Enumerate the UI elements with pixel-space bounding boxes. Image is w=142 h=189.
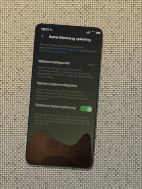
- staticText: Maksimumskapacitet: [38, 59, 71, 65]
- staticText: 96 %: [88, 63, 96, 67]
- staticText: Dette er en måling af batterikapaciteten…: [37, 65, 95, 81]
- staticText: På et nyt niveau giver batteritilstand d…: [39, 42, 97, 55]
- staticText: Understøtter normal maksimal ydeevne. Jo…: [36, 87, 93, 103]
- button[interactable]: Optimeret batteriopladning: [30, 100, 96, 113]
- staticText: iPhone lærer, hvordan du oplader, for at…: [34, 112, 91, 128]
- staticText: Optimeret batteriopladning: [35, 103, 76, 110]
- staticText: 10:11: [41, 27, 49, 32]
- staticText: Batteritilstand og opladning: [49, 35, 91, 42]
- button[interactable]: Maksimumskapacitet: [33, 58, 100, 67]
- button[interactable]: Tilbage: [39, 33, 46, 39]
- staticText: Maksimal ydeevnekapacitet: [37, 81, 78, 88]
